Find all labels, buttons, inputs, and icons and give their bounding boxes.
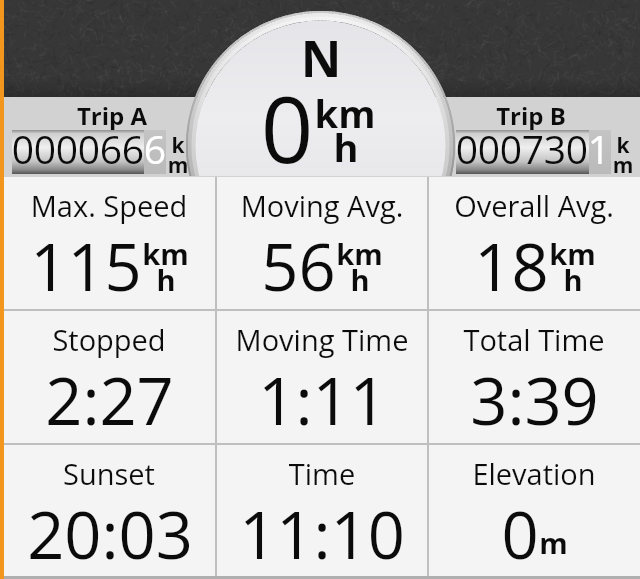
staticText: 0 xyxy=(339,122,639,175)
button[interactable] xyxy=(429,177,640,309)
staticText: Trip A xyxy=(0,99,262,132)
button[interactable] xyxy=(4,177,215,309)
staticText: h xyxy=(196,121,496,173)
button[interactable] xyxy=(429,311,640,443)
staticText: 0 xyxy=(0,122,173,175)
staticText: 6 xyxy=(0,122,261,175)
staticText: 56 xyxy=(261,222,336,311)
staticText: Stopped xyxy=(0,320,259,359)
staticText: Moving Avg. xyxy=(172,186,472,225)
staticText: 3:39 xyxy=(470,356,599,445)
staticText: Max. Speed xyxy=(0,186,259,225)
staticText: 0 xyxy=(0,122,217,175)
staticText: m xyxy=(473,151,640,180)
staticText: Trip B xyxy=(381,99,640,132)
staticText: 0 xyxy=(427,122,640,175)
button[interactable] xyxy=(456,130,611,174)
staticText: km xyxy=(142,234,189,273)
staticText: 7 xyxy=(383,122,640,175)
button[interactable] xyxy=(4,445,215,577)
staticText: 115 xyxy=(30,222,142,311)
staticText: km xyxy=(195,87,495,139)
staticText: 0 xyxy=(137,65,437,190)
staticText: m xyxy=(539,523,568,562)
staticText: 0 xyxy=(501,490,539,579)
staticText: 6 xyxy=(0,122,283,175)
staticText: h xyxy=(563,260,583,299)
staticText: 0 xyxy=(0,122,195,175)
staticText: 20:03 xyxy=(27,490,193,579)
staticText: Total Time xyxy=(384,320,640,359)
staticText: Sunset xyxy=(0,454,259,493)
staticText: 0 xyxy=(361,122,640,175)
staticText: 2:27 xyxy=(45,356,174,445)
staticText: k xyxy=(473,131,640,160)
staticText: N xyxy=(171,24,471,92)
staticText: 1:11 xyxy=(258,356,387,445)
staticText: km xyxy=(336,234,383,273)
staticText: 18 xyxy=(474,222,549,311)
staticText: 11:10 xyxy=(239,490,405,579)
staticText: 6 xyxy=(5,122,305,175)
staticText: 0 xyxy=(317,122,617,175)
staticText: 3 xyxy=(405,122,640,175)
staticText: Overall Avg. xyxy=(384,186,640,225)
staticText: 1 xyxy=(449,122,640,175)
staticText: Moving Time xyxy=(172,320,472,359)
button[interactable] xyxy=(217,177,427,309)
staticText: h xyxy=(156,260,176,299)
staticText: m xyxy=(28,151,328,180)
button[interactable] xyxy=(217,311,427,443)
button[interactable] xyxy=(217,445,427,577)
staticText: h xyxy=(350,260,370,299)
staticText: k xyxy=(28,131,328,160)
staticText: Elevation xyxy=(384,454,640,493)
button[interactable] xyxy=(429,445,640,577)
staticText: 0 xyxy=(0,122,239,175)
button[interactable] xyxy=(4,311,215,443)
staticText: km xyxy=(549,234,596,273)
staticText: Time xyxy=(172,454,472,493)
button[interactable] xyxy=(12,130,166,174)
